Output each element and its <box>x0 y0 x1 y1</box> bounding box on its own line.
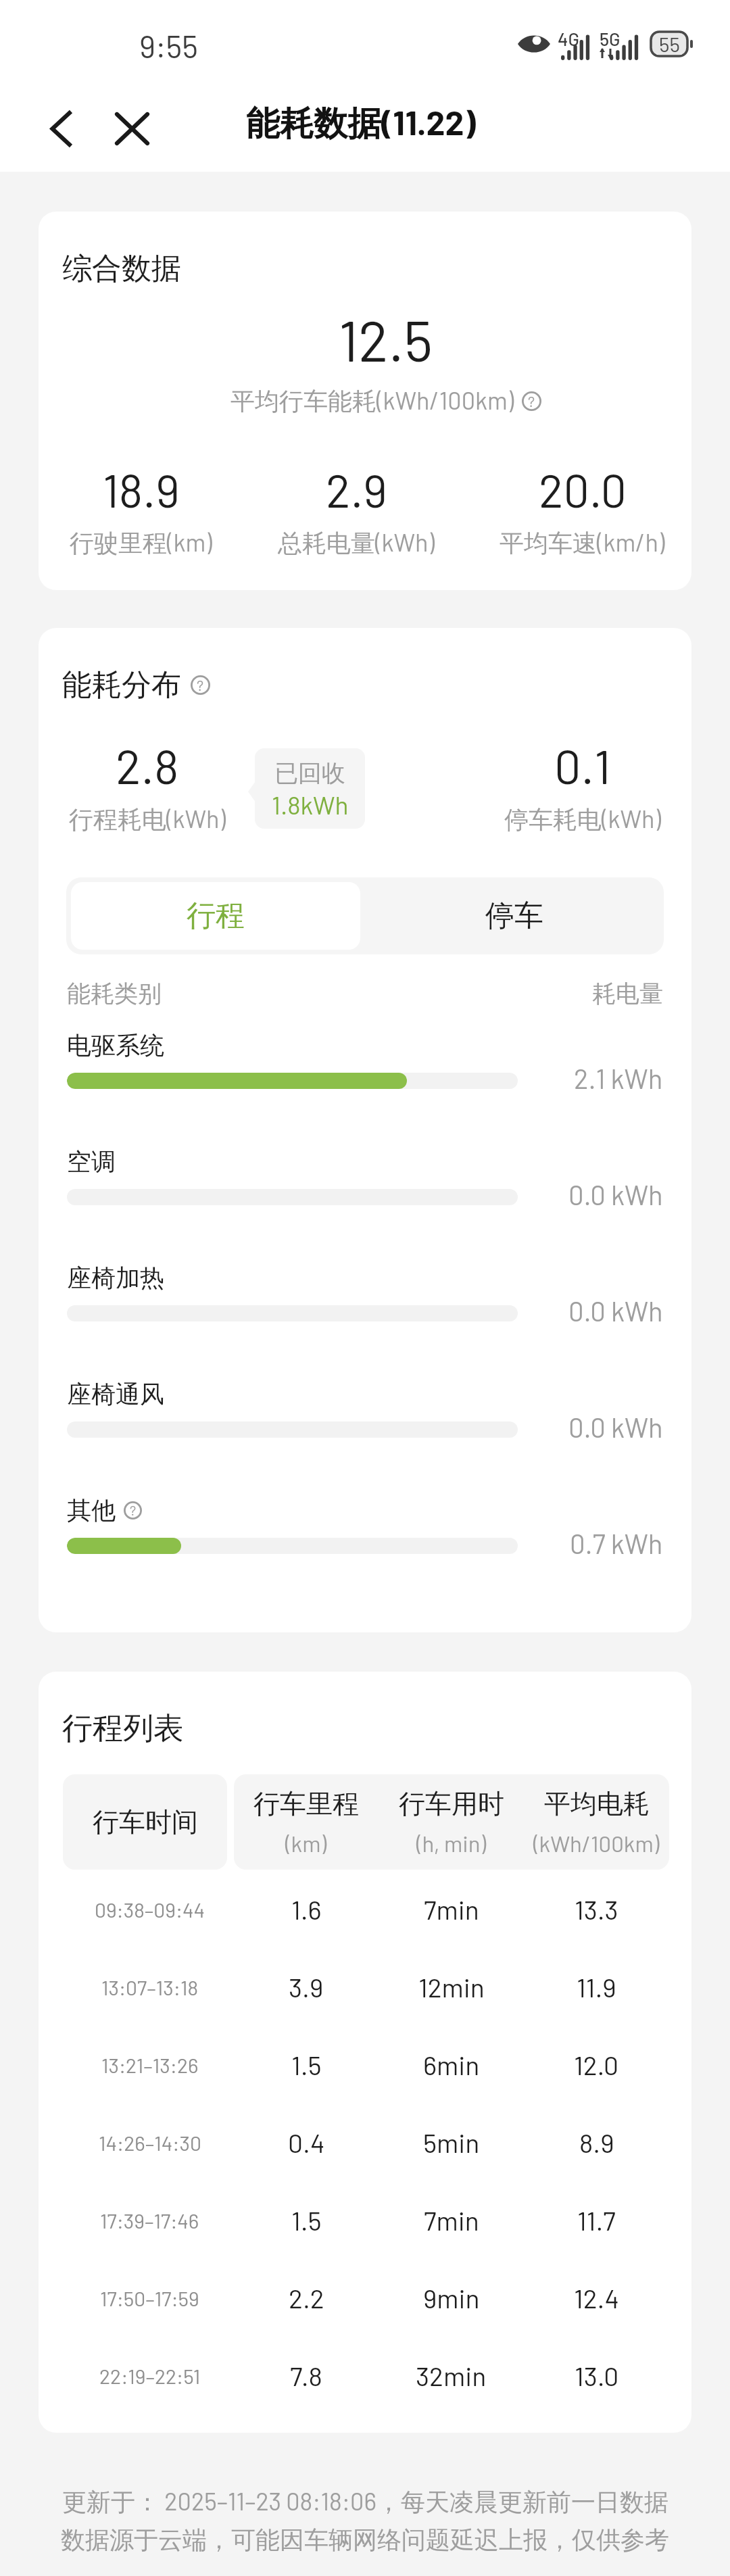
staticText: 0.0 kWh <box>568 1411 663 1443</box>
staticText: 20.0 <box>539 462 627 517</box>
staticText: 0.1 <box>554 737 611 794</box>
staticText: ? <box>528 392 535 410</box>
button[interactable]: 行程 <box>71 882 360 950</box>
staticText: 0.0 kWh <box>568 1294 663 1327</box>
staticText: 11.9 <box>577 1971 616 2003</box>
staticText: 11.7 <box>577 2204 616 2236</box>
staticText: ? <box>197 676 204 694</box>
staticText: 1.5 <box>291 2049 322 2081</box>
staticText: 能耗数据(11.22) <box>246 101 476 145</box>
staticText: 2.1 kWh <box>574 1062 663 1094</box>
staticText: (kWh/100km) <box>533 1830 660 1857</box>
staticText: (km) <box>285 1830 327 1857</box>
staticText: 12.0 <box>574 2049 619 2081</box>
staticText: 12min <box>418 1971 485 2003</box>
staticText: 能耗类别 <box>67 979 162 1008</box>
button[interactable]: Close <box>105 97 156 149</box>
staticText: 空调 <box>67 1146 116 1177</box>
staticText: 5G <box>600 28 620 49</box>
staticText: 55 <box>659 32 680 56</box>
staticText: 14:26–14:30 <box>99 2131 201 2155</box>
staticText: 18.9 <box>103 462 180 517</box>
staticText: 行程 <box>187 898 245 934</box>
staticText: 1.8kWh <box>272 789 349 819</box>
staticText: 座椅加热 <box>67 1263 164 1293</box>
staticText: 12.4 <box>574 2282 619 2314</box>
staticText: 更新于： 2025–11–23 08:18:06，每天凌晨更新前一日数据 <box>62 2486 668 2518</box>
staticText: 1.5 <box>291 2204 322 2236</box>
staticText: 2.2 <box>289 2282 324 2314</box>
button[interactable]: Back <box>35 97 87 149</box>
staticText: 13:07–13:18 <box>101 1975 199 1999</box>
staticText: 平均电耗 <box>544 1787 650 1820</box>
staticText: 9:55 <box>139 27 198 64</box>
staticText: 13.3 <box>575 1893 618 1925</box>
button[interactable]: Info <box>522 391 541 411</box>
staticText: 3.9 <box>289 1971 324 2003</box>
staticText: 座椅通风 <box>67 1379 164 1409</box>
staticText: 13:21–13:26 <box>101 2053 199 2077</box>
staticText: 耗电量 <box>592 979 663 1008</box>
staticText: 7min <box>424 1893 479 1925</box>
button[interactable]: Info <box>191 675 210 695</box>
staticText: 32min <box>416 2360 487 2391</box>
staticText: 9min <box>423 2282 480 2314</box>
staticText: 13.0 <box>575 2360 619 2391</box>
staticText: 2.9 <box>326 462 387 517</box>
staticText: (h, min) <box>416 1830 487 1857</box>
staticText: 平均车速(km/h) <box>500 527 665 559</box>
staticText: 22:19–22:51 <box>99 2364 201 2388</box>
staticText: 停车耗电(kWh) <box>504 804 661 835</box>
button[interactable]: 停车 <box>365 877 664 954</box>
staticText: 4G <box>558 28 579 49</box>
staticText: 7.8 <box>290 2360 322 2391</box>
staticText: 行驶里程(km) <box>70 527 212 559</box>
staticText: 5min <box>423 2127 480 2158</box>
staticText: 行车用时 <box>399 1787 504 1820</box>
staticText: 17:39–17:46 <box>100 2208 199 2233</box>
staticText: 8.9 <box>579 2127 614 2158</box>
staticText: 其他 <box>67 1495 116 1526</box>
staticText: 已回收 <box>274 758 345 788</box>
staticText: 0.7 kWh <box>570 1527 663 1559</box>
staticText: 09:38–09:44 <box>95 1897 205 1922</box>
staticText: 2.8 <box>116 737 179 794</box>
staticText: 7min <box>424 2204 479 2236</box>
staticText: 12.5 <box>339 306 433 373</box>
staticText: 平均行车能耗(kWh/100km) <box>230 385 514 417</box>
staticText: 行车时间 <box>93 1805 198 1839</box>
staticText: 能耗分布 <box>62 666 181 704</box>
staticText: 综合数据 <box>62 250 181 287</box>
button[interactable]: Info <box>124 1501 142 1520</box>
staticText: 行程耗电(kWh) <box>69 804 226 835</box>
staticText: 行程列表 <box>62 1709 184 1748</box>
staticText: 17:50–17:59 <box>100 2286 199 2310</box>
staticText: 0.0 kWh <box>568 1178 663 1211</box>
staticText: 电驱系统 <box>67 1030 164 1061</box>
staticText: ? <box>130 1502 137 1518</box>
staticText: 1.6 <box>291 1893 322 1925</box>
staticText: 总耗电量(kWh) <box>278 527 435 559</box>
staticText: 0.4 <box>288 2127 325 2158</box>
staticText: 停车 <box>485 898 543 934</box>
staticText: 行车里程 <box>253 1787 359 1820</box>
staticText: 6min <box>423 2049 480 2081</box>
staticText: 数据源于云端，可能因车辆网络问题延迟上报，仅供参考 <box>61 2525 669 2555</box>
